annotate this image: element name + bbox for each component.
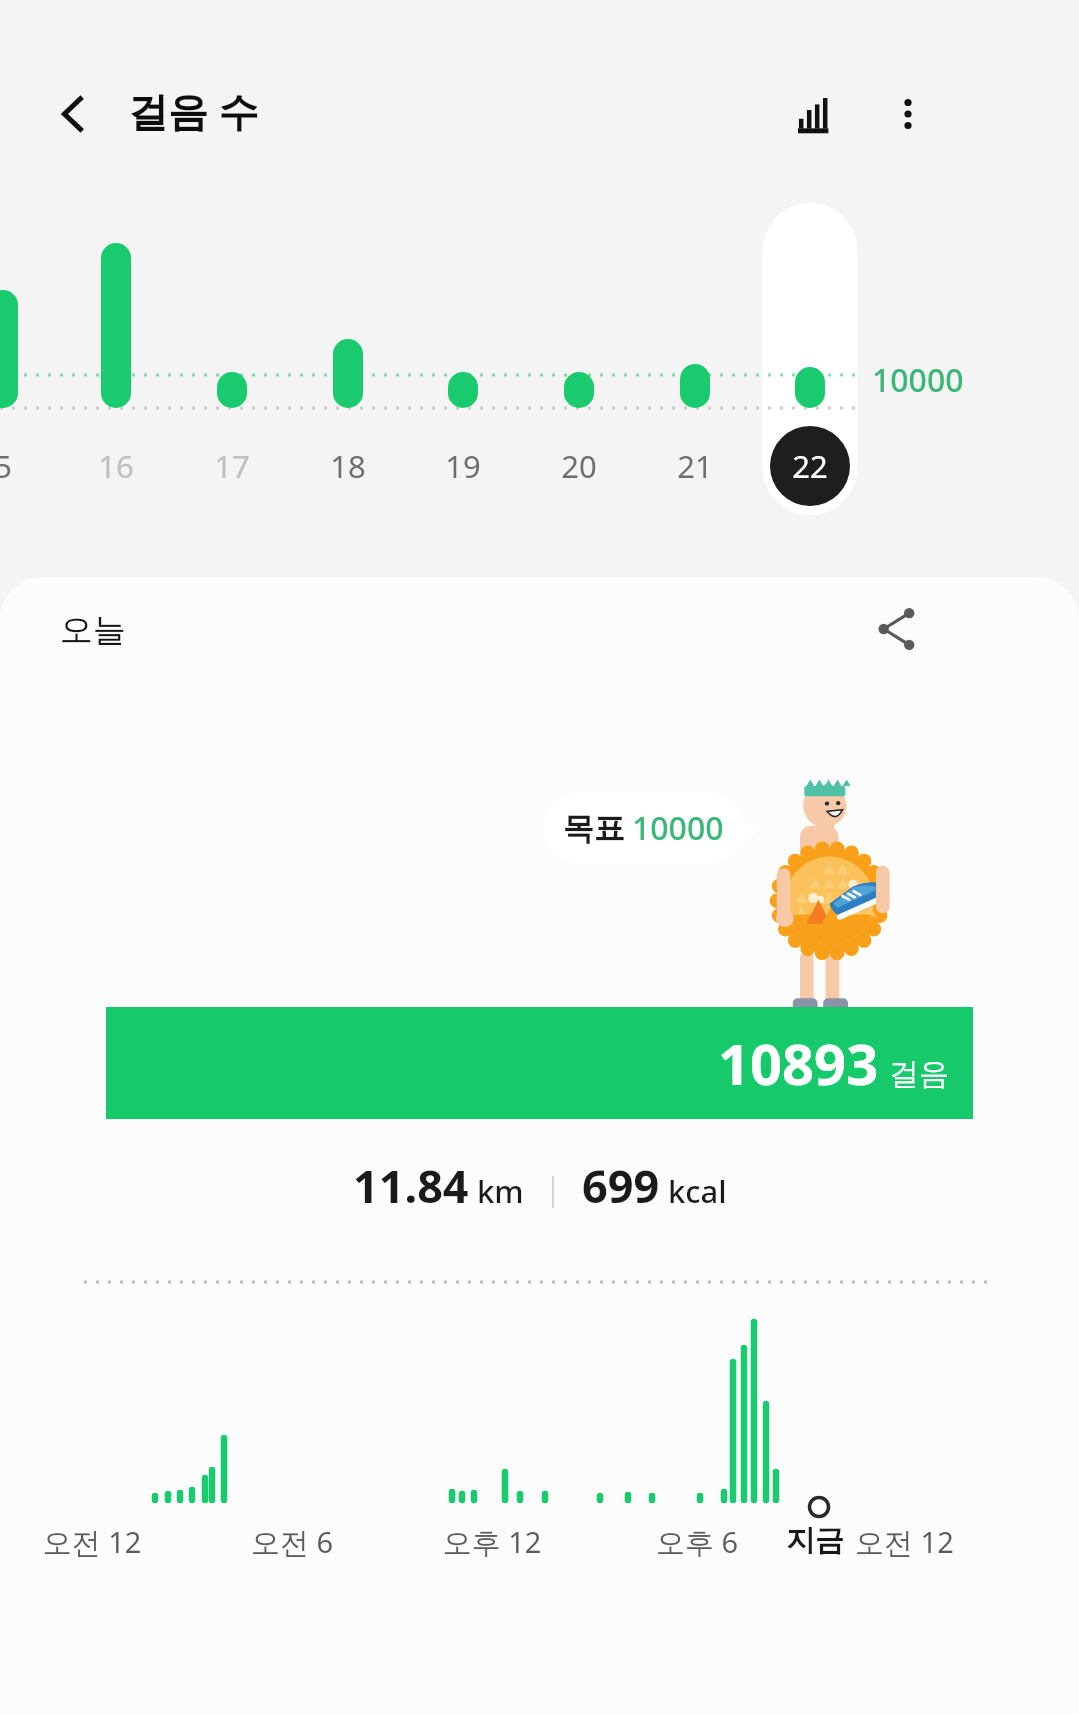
staticText: 11.84 (353, 1155, 469, 1216)
staticText: 5 (0, 445, 12, 487)
button[interactable]: Chart (778, 78, 850, 150)
staticText: 오전 12 (855, 1522, 954, 1562)
staticText: 오후 12 (437, 1522, 547, 1562)
staticText: 22 (792, 445, 828, 487)
button[interactable]: 16 (76, 430, 156, 502)
button[interactable]: 17 (192, 430, 272, 502)
staticText: 걸음 (889, 1055, 949, 1093)
staticText: 19 (445, 445, 481, 487)
button[interactable]: Share (854, 587, 938, 671)
staticText: 오전 6 (237, 1522, 347, 1562)
button[interactable]: 18 (308, 430, 388, 502)
button[interactable]: 5 (0, 430, 43, 502)
staticText: km (477, 1170, 524, 1212)
staticText: kcal (668, 1170, 727, 1212)
staticText: 699 (582, 1155, 660, 1216)
button[interactable]: 20 (539, 430, 619, 502)
staticText: 10000 (872, 358, 964, 402)
button[interactable]: 19 (423, 430, 503, 502)
staticText: 20 (561, 445, 597, 487)
staticText: 걸음 수 (128, 83, 259, 138)
button[interactable]: 22 (770, 430, 850, 502)
staticText: 오전 12 (37, 1522, 147, 1562)
staticText: 10893 (718, 1025, 879, 1101)
button[interactable]: 21 (655, 430, 735, 502)
button[interactable]: 10893 (106, 1007, 973, 1119)
staticText: 오늘 (60, 609, 126, 651)
staticText: 목표 (563, 809, 625, 848)
staticText: 17 (214, 445, 250, 487)
staticText: 지금 (786, 1522, 844, 1559)
button[interactable]: More options (872, 78, 944, 150)
button[interactable]: Back (38, 78, 110, 150)
staticText: 21 (677, 445, 713, 487)
staticText: 18 (330, 445, 366, 487)
staticText: 10000 (632, 806, 724, 850)
staticText: 16 (98, 445, 134, 487)
staticText: 오후 6 (642, 1522, 752, 1562)
